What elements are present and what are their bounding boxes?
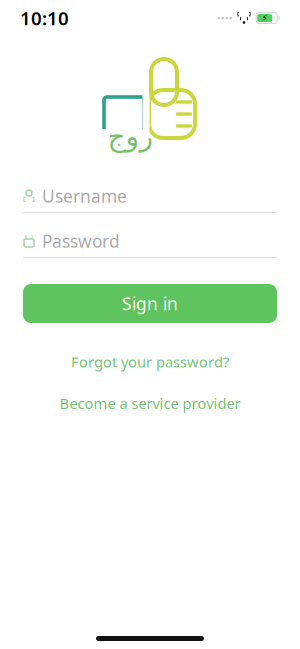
staticText: روج [107,120,153,152]
staticText: Sign in [122,292,178,315]
button[interactable]: Sign in [23,284,277,323]
staticText: Forgot your password? [71,352,229,371]
staticText: ⚡︎ [261,13,268,23]
button[interactable]: Become a service provider [49,389,250,417]
staticText: Password [42,229,120,252]
staticText: Username [42,184,127,207]
staticText: Become a service provider [59,393,240,413]
button[interactable]: Forgot your password? [61,348,239,375]
staticText: 10:10 [20,6,69,30]
